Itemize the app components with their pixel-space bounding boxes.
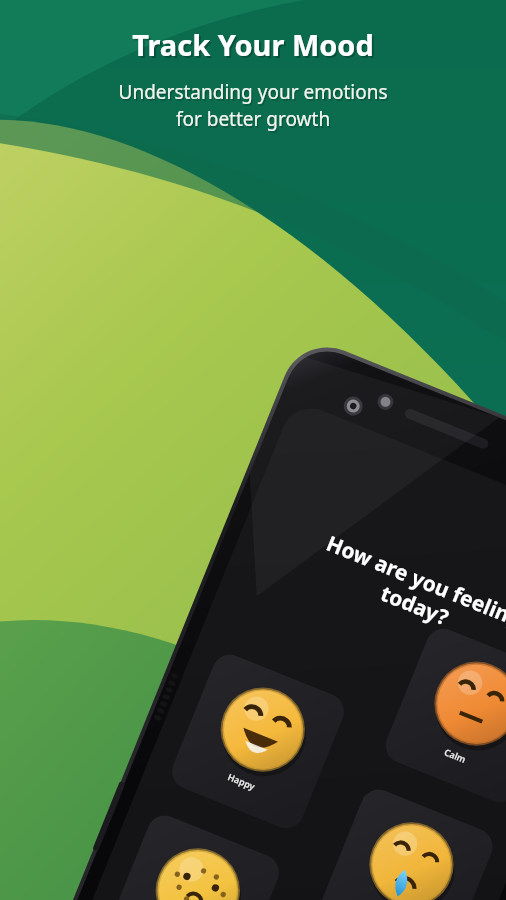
button[interactable]: Track Your Mood onboarding <box>0 0 506 900</box>
